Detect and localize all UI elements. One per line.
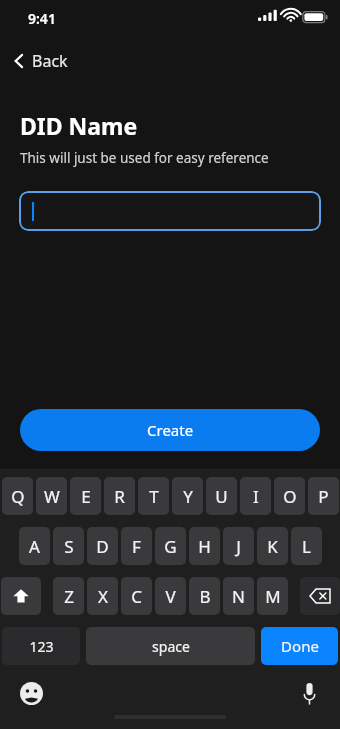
staticText: I: [253, 485, 259, 508]
button[interactable]: Q: [2, 477, 33, 515]
staticText: E: [81, 485, 91, 508]
button[interactable]: A: [19, 527, 50, 565]
button[interactable]: V: [155, 577, 186, 615]
staticText: 123: [29, 637, 54, 656]
staticText: Q: [11, 485, 25, 508]
other: Back: [12, 52, 26, 70]
button[interactable]: Shift: [1, 577, 41, 615]
staticText: F: [132, 535, 141, 558]
staticText: D: [96, 535, 109, 558]
staticText: space: [152, 637, 190, 656]
staticText: S: [64, 535, 74, 558]
staticText: J: [236, 535, 241, 558]
button[interactable]: G: [155, 527, 186, 565]
button[interactable]: H: [189, 527, 220, 565]
button[interactable]: Done: [261, 627, 338, 665]
staticText: M: [265, 585, 281, 608]
staticText: X: [98, 585, 108, 608]
button[interactable]: Emoji: [16, 678, 46, 708]
button[interactable]: D: [87, 527, 118, 565]
staticText: V: [165, 585, 176, 608]
staticText: W: [44, 485, 60, 508]
staticText: C: [131, 585, 142, 608]
button[interactable]: T: [138, 477, 169, 515]
button[interactable]: Dictation: [294, 678, 324, 708]
staticText: B: [199, 585, 211, 608]
staticText: U: [215, 485, 228, 508]
button[interactable]: Back: [8, 46, 72, 76]
staticText: K: [267, 535, 278, 558]
button[interactable]: J: [223, 527, 254, 565]
staticText: Create: [147, 420, 194, 440]
staticText: Z: [64, 585, 74, 608]
button[interactable]: [19, 191, 321, 231]
staticText: Back: [32, 50, 68, 72]
button[interactable]: M: [257, 577, 288, 615]
button[interactable]: space: [86, 627, 255, 665]
staticText: L: [302, 535, 311, 558]
staticText: DID Name: [20, 110, 138, 141]
button[interactable]: C: [121, 577, 152, 615]
staticText: R: [114, 485, 125, 508]
button[interactable]: N: [223, 577, 254, 615]
staticText: P: [318, 485, 329, 508]
button[interactable]: Create: [20, 409, 320, 451]
button[interactable]: Z: [53, 577, 84, 615]
staticText: N: [232, 585, 245, 608]
button[interactable]: W: [36, 477, 67, 515]
staticText: H: [198, 535, 211, 558]
staticText: 9:41: [28, 9, 56, 28]
button[interactable]: K: [257, 527, 288, 565]
staticText: T: [149, 485, 159, 508]
button[interactable]: Backspace: [300, 577, 340, 615]
button[interactable]: P: [308, 477, 339, 515]
button[interactable]: U: [206, 477, 237, 515]
button[interactable]: 123: [2, 627, 80, 665]
button[interactable]: L: [291, 527, 322, 565]
button[interactable]: E: [70, 477, 101, 515]
staticText: This will just be used for easy referenc…: [20, 149, 269, 167]
staticText: G: [164, 535, 177, 558]
button[interactable]: X: [87, 577, 118, 615]
button[interactable]: F: [121, 527, 152, 565]
button[interactable]: R: [104, 477, 135, 515]
button[interactable]: I: [240, 477, 271, 515]
staticText: Y: [183, 485, 193, 508]
button[interactable]: O: [274, 477, 305, 515]
staticText: A: [29, 535, 40, 558]
button[interactable]: B: [189, 577, 220, 615]
staticText: O: [283, 485, 297, 508]
staticText: Done: [281, 636, 319, 656]
button[interactable]: Y: [172, 477, 203, 515]
button[interactable]: S: [53, 527, 84, 565]
